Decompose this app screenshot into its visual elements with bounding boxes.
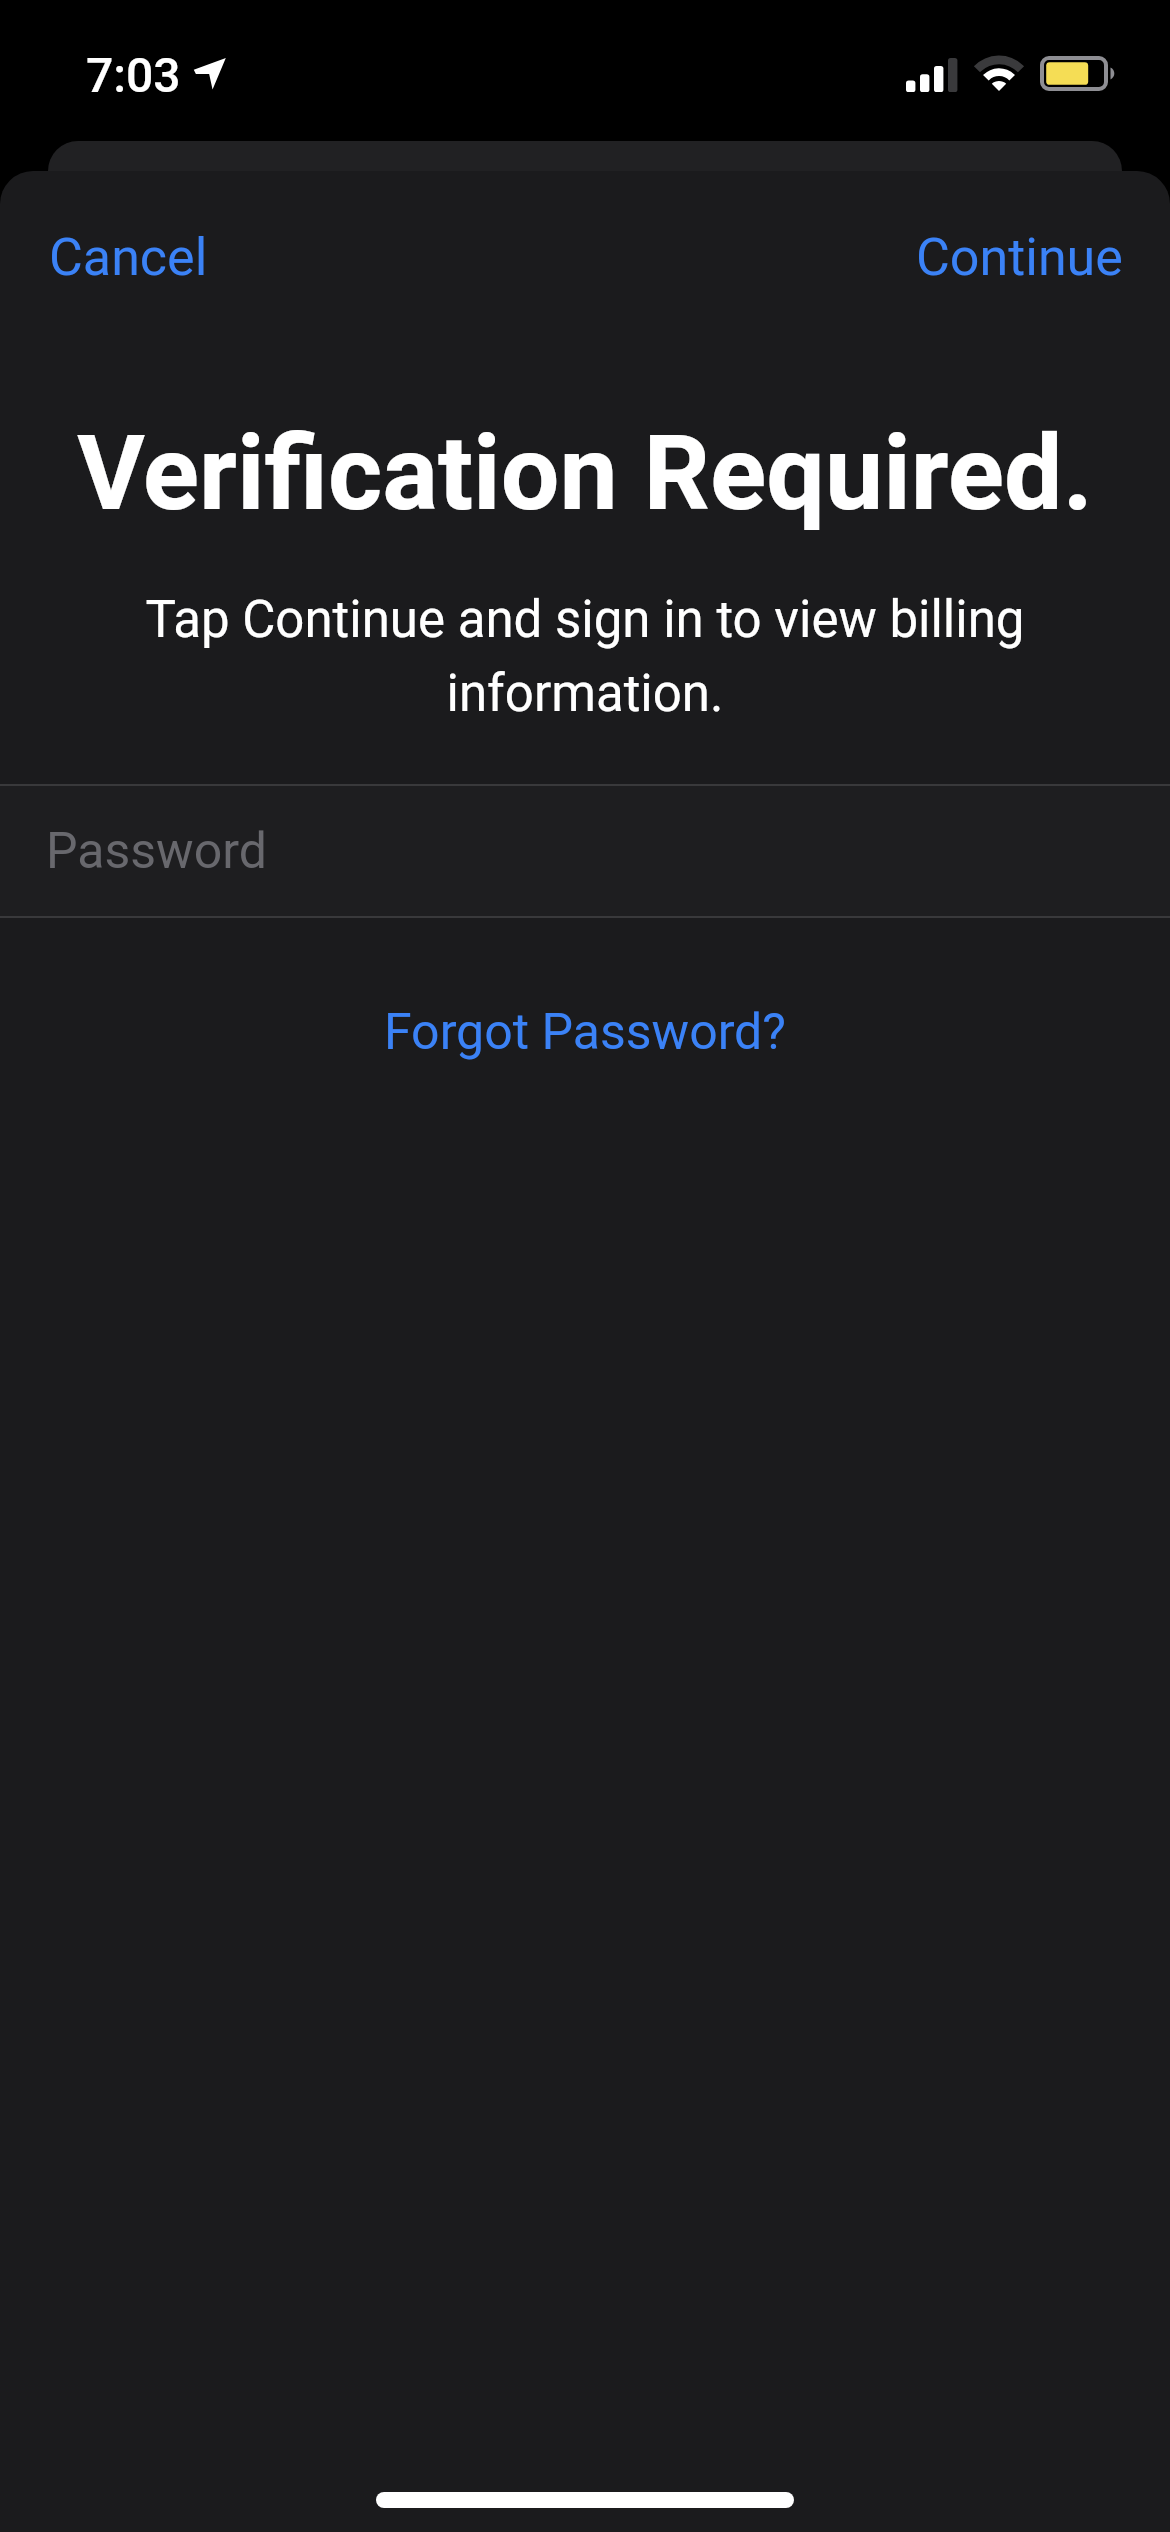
staticText: Cancel bbox=[49, 227, 208, 288]
staticText: Password bbox=[46, 822, 267, 881]
staticText: Continue bbox=[916, 227, 1123, 288]
button[interactable]: Cancel bbox=[7, 193, 250, 322]
staticText: Tap Continue and sign in to view billing… bbox=[120, 590, 1050, 723]
other: Battery, low power mode bbox=[1040, 56, 1116, 92]
staticText: Forgot Password? bbox=[384, 1003, 786, 1062]
button[interactable]: Continue bbox=[874, 193, 1165, 322]
other: Wi-Fi bbox=[973, 54, 1027, 94]
other: Cellular signal strength bbox=[906, 56, 958, 92]
staticText: Verification Required. bbox=[0, 413, 1170, 535]
other: Location services active bbox=[193, 56, 227, 91]
button[interactable]: Forgot Password? bbox=[354, 985, 816, 1080]
staticText: 7:03 bbox=[86, 47, 181, 103]
button[interactable]: Password bbox=[0, 786, 1170, 916]
